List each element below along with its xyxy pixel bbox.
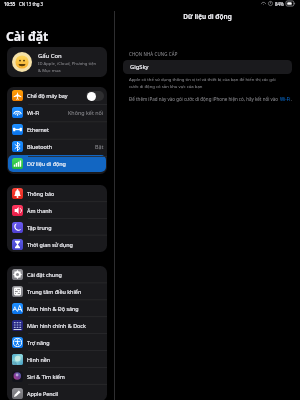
button[interactable]: Cài đặt chung (8, 266, 106, 283)
staticText: Apple Pencil (27, 390, 58, 397)
staticText: Màn hình chính & Dock (27, 322, 86, 329)
staticText: Siri & Tìm kiếm (27, 373, 65, 380)
staticText: Dữ liệu di động (27, 160, 66, 167)
staticText: Wi-Fi (280, 96, 291, 102)
button[interactable]: Wi-Fi (8, 104, 106, 121)
button[interactable]: Dữ liệu di động (8, 155, 106, 172)
staticText: Dữ liệu di động (115, 12, 300, 21)
staticText: Cài đặt chung (27, 271, 62, 278)
staticText: Màn hình & Độ sáng (27, 305, 79, 312)
staticText: 84% (275, 1, 284, 7)
staticText: GigSky (130, 63, 149, 71)
button[interactable]: Airplane mode toggle (86, 91, 104, 101)
button[interactable]: Màn hình chính & Dock (8, 317, 106, 334)
button[interactable]: Ethernet (8, 121, 106, 138)
staticText: Thời gian sử dụng (27, 241, 73, 248)
staticText: Ethernet (27, 126, 49, 133)
staticText: Gấu Con (38, 52, 62, 60)
staticText: Thông báo (27, 190, 55, 197)
button[interactable]: Màn hình & Độ sáng (8, 300, 106, 317)
staticText: . (291, 96, 293, 102)
button[interactable]: Siri & Tìm kiếm (8, 368, 106, 385)
staticText: CN 13 thg 3 (19, 1, 44, 7)
button[interactable]: GigSky (123, 60, 292, 74)
staticText: 10:55 (4, 1, 16, 7)
staticText: Tập trung (27, 224, 52, 231)
button[interactable]: Trợ năng (8, 334, 106, 351)
staticText: Không kết nối (68, 109, 104, 116)
staticText: Trợ năng (27, 339, 50, 346)
button[interactable]: Trung tâm điều khiển (8, 283, 106, 300)
button[interactable]: Thời gian sử dụng (8, 236, 106, 252)
staticText: CHỌN NHÀ CUNG CẤP (129, 51, 178, 57)
staticText: Bluetooth (27, 143, 53, 150)
staticText: Hình nền (27, 356, 51, 363)
button[interactable]: Âm thanh (8, 202, 106, 219)
staticText: Cài đặt (6, 28, 49, 45)
staticText: Chế độ máy bay (27, 92, 68, 99)
button[interactable]: Bluetooth (8, 138, 106, 155)
button[interactable]: Gấu Con (7, 47, 107, 77)
button[interactable]: Chế độ máy bay (8, 87, 106, 104)
staticText: Trung tâm điều khiển (27, 288, 82, 295)
staticText: Wi-Fi (27, 109, 40, 116)
staticText: Apple có thể sử dụng thông tin vị trí và… (129, 76, 276, 89)
button[interactable]: Hình nền (8, 351, 106, 368)
staticText: ID Apple, iCloud, Phương tiện & Mục mua (38, 61, 97, 73)
button[interactable]: Tập trung (8, 219, 106, 236)
staticText: Âm thanh (27, 207, 52, 214)
button[interactable]: Thông báo (8, 185, 106, 202)
staticText: Để thêm iPad này vào gói cước di động iP… (129, 96, 280, 102)
staticText: Bật (95, 143, 104, 150)
button[interactable]: Apple Pencil (8, 385, 106, 400)
